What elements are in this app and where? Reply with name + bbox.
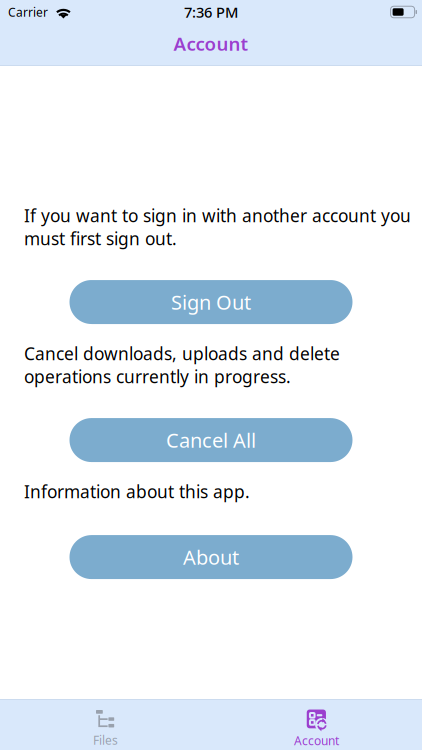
button[interactable]: Sign Out xyxy=(69,280,352,324)
staticText: 7:36 PM xyxy=(184,2,238,22)
staticText: About xyxy=(183,544,239,570)
staticText: Files xyxy=(93,732,118,748)
staticText: Account xyxy=(294,732,339,748)
button[interactable]: Account xyxy=(211,697,422,750)
button[interactable]: Cancel All xyxy=(69,418,352,462)
staticText: Account xyxy=(173,31,248,56)
staticText: Cancel All xyxy=(166,427,256,453)
staticText: Carrier xyxy=(8,4,48,20)
staticText: Information about this app. xyxy=(24,480,250,503)
button[interactable]: About xyxy=(69,535,352,579)
staticText: If you want to sign in with another acco… xyxy=(24,204,411,250)
staticText: Sign Out xyxy=(171,289,251,315)
staticText: Cancel downloads, uploads and delete ope… xyxy=(24,342,340,388)
button[interactable]: Files xyxy=(0,698,211,750)
